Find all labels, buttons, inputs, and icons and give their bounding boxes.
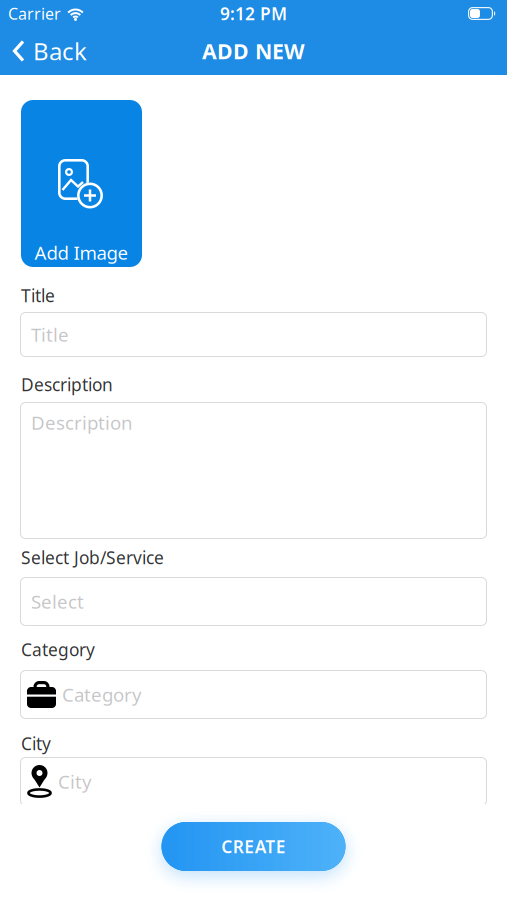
staticText: CREATE: [221, 835, 286, 858]
staticText: City: [21, 732, 51, 755]
staticText: 9:12 PM: [220, 2, 287, 25]
staticText: Add Image: [34, 240, 128, 265]
staticText: Title: [21, 284, 55, 307]
staticText: ADD NEW: [202, 37, 305, 65]
button[interactable]: Title: [20, 312, 487, 357]
staticText: Select: [31, 589, 84, 614]
button[interactable]: CREATE: [161, 822, 345, 871]
button[interactable]: Description: [20, 402, 487, 539]
button[interactable]: Select: [20, 577, 487, 626]
staticText: City: [58, 769, 92, 794]
staticText: Back: [33, 35, 87, 67]
staticText: Select Job/Service: [21, 546, 164, 569]
staticText: Title: [31, 322, 69, 347]
staticText: Category: [21, 638, 95, 661]
staticText: Description: [31, 410, 133, 435]
staticText: Carrier: [8, 3, 61, 24]
button[interactable]: Back: [0, 27, 95, 75]
staticText: Description: [21, 373, 113, 396]
button[interactable]: Category: [20, 670, 487, 719]
button[interactable]: Add Image: [21, 100, 142, 267]
staticText: Category: [62, 682, 142, 707]
button[interactable]: City: [20, 757, 487, 806]
